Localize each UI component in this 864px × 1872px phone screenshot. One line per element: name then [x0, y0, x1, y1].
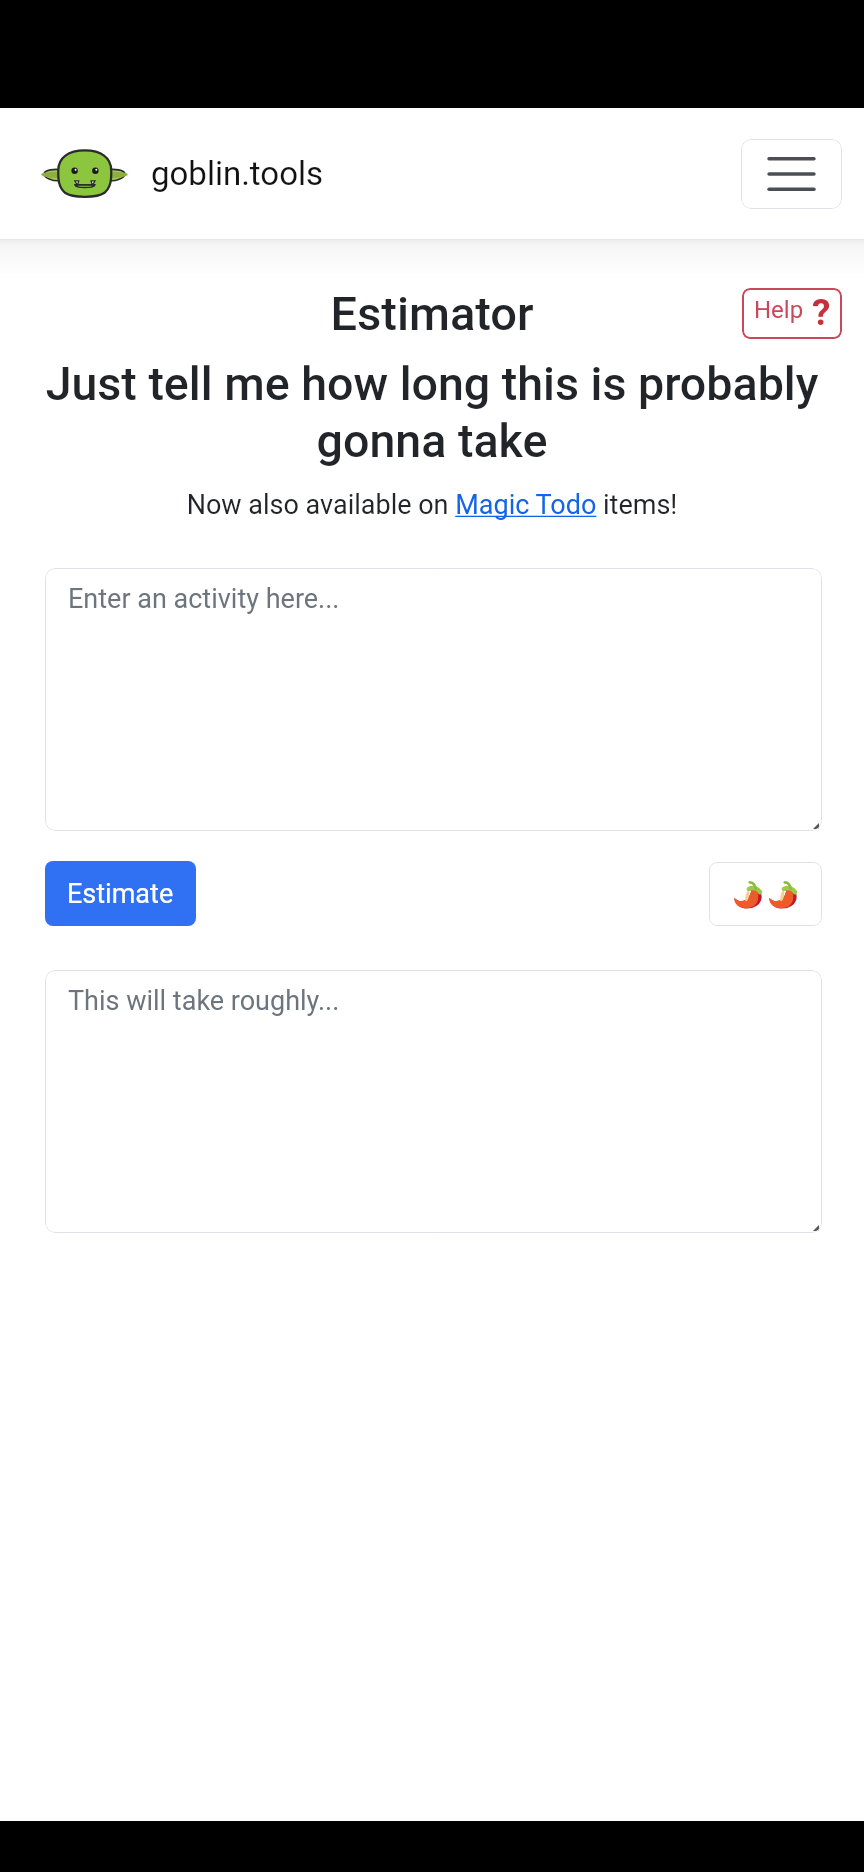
button[interactable]: Menu: [741, 139, 842, 209]
button[interactable]: goblin.tools: [43, 150, 324, 197]
staticText: Enter an activity here...: [68, 583, 340, 615]
staticText: Just tell me how long this is probably g…: [40, 357, 824, 468]
staticText: This will take roughly...: [68, 985, 340, 1017]
staticText: Estimator: [22, 286, 842, 341]
staticText: Now also available on Magic Todo items!: [0, 489, 864, 521]
staticText: goblin.tools: [151, 154, 324, 193]
staticText: Estimate: [67, 878, 174, 910]
button[interactable]: This will take roughly...: [45, 970, 822, 1233]
button[interactable]: Estimate: [45, 861, 196, 926]
button[interactable]: Enter an activity here...: [45, 568, 822, 831]
staticText: Help: [754, 296, 804, 324]
button[interactable]: Help: [742, 288, 842, 339]
button[interactable]: Spiciness: [709, 862, 822, 926]
staticText: ?: [812, 291, 831, 334]
